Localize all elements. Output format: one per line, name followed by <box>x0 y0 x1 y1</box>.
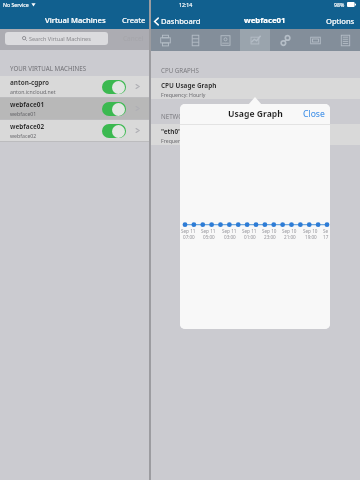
staticText: 98% <box>334 1 345 8</box>
staticText: Sep 10 <box>303 228 318 234</box>
button[interactable]: Search Virtual Machines <box>5 32 108 45</box>
button[interactable]: webface02 <box>0 120 149 141</box>
staticText: webface01 <box>10 110 37 117</box>
staticText: No Service <box>3 1 29 8</box>
staticText: Frequency: Hourly <box>161 137 206 144</box>
staticText: Search Virtual Machines <box>29 35 91 42</box>
button[interactable]: Power toggle <box>102 80 126 94</box>
button[interactable]: Logs <box>330 29 360 51</box>
button[interactable]: Close <box>303 108 330 120</box>
button[interactable]: Create <box>122 15 149 25</box>
staticText: Sep 10 <box>282 228 297 234</box>
staticText: Sep 10 <box>262 228 277 234</box>
staticText: 07:00 <box>183 234 195 240</box>
staticText: 17 <box>323 234 329 240</box>
staticText: Usage Graph <box>228 108 283 120</box>
button[interactable]: Options <box>326 16 360 26</box>
staticText: Dashboard <box>161 16 201 26</box>
staticText: 19:00 <box>305 234 317 240</box>
staticText: CPU Usage Graph <box>161 81 217 90</box>
staticText: webface01 <box>244 15 286 26</box>
staticText: anton-cgpro <box>10 78 50 87</box>
staticText: Sep 11 <box>181 228 196 234</box>
button[interactable]: Network <box>270 29 300 51</box>
staticText: Close <box>303 108 325 120</box>
staticText: Se <box>323 228 329 234</box>
button[interactable]: Console <box>151 29 180 51</box>
staticText: 03:00 <box>224 234 236 240</box>
button[interactable]: Storage <box>180 29 210 51</box>
button[interactable]: "eth0" <box>151 124 360 145</box>
button[interactable]: Graphs <box>240 29 270 51</box>
staticText: Frequency: Hourly <box>161 91 206 98</box>
button[interactable]: Power toggle <box>102 124 126 138</box>
staticText: webface02 <box>10 132 37 139</box>
staticText: NETWORK <box>161 112 191 120</box>
button[interactable]: webface01 <box>0 98 149 119</box>
staticText: Sep 11 <box>222 228 237 234</box>
staticText: Virtual Machines <box>45 15 106 25</box>
staticText: 12:14 <box>179 1 193 8</box>
staticText: Sep 11 <box>201 228 216 234</box>
staticText: 23:00 <box>264 234 276 240</box>
button[interactable]: Backups <box>210 29 240 51</box>
button[interactable]: Console2 <box>300 29 330 51</box>
staticText: 21:00 <box>284 234 296 240</box>
staticText: Create <box>122 15 146 25</box>
staticText: "eth0" <box>161 127 182 136</box>
button[interactable]: Dashboard <box>151 16 205 26</box>
staticText: Sep 11 <box>242 228 257 234</box>
button[interactable]: CPU Usage Graph <box>151 78 360 99</box>
staticText: YOUR VIRTUAL MACHINES <box>10 64 87 72</box>
staticText: Options <box>326 16 355 26</box>
staticText: 01:00 <box>244 234 256 240</box>
staticText: webface02 <box>10 122 45 131</box>
button[interactable]: anton-cgpro <box>0 76 149 97</box>
staticText: webface01 <box>10 100 45 109</box>
staticText: 05:00 <box>203 234 215 240</box>
staticText: CPU GRAPHS <box>161 66 199 74</box>
button[interactable]: Power toggle <box>102 102 126 116</box>
staticText: anton.icncloud.net <box>10 88 56 95</box>
